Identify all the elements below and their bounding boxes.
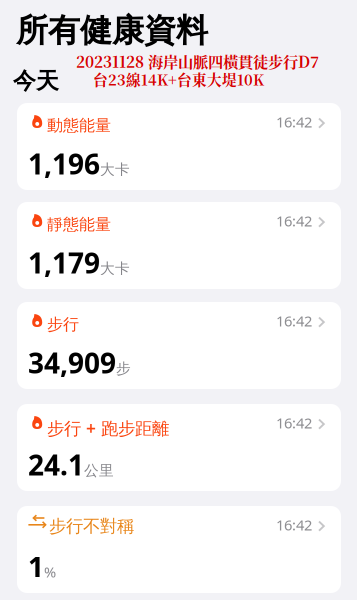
button[interactable]: 步行 — [17, 302, 341, 389]
staticText: 大卡 — [100, 260, 130, 278]
staticText: 動態能量 — [47, 115, 111, 135]
button[interactable]: 步行 + 跑步距離 — [17, 404, 341, 491]
staticText: 台23線14K+台東大堤10K — [93, 68, 264, 90]
staticText: % — [44, 562, 56, 581]
staticText: 20231128 海岸山脈四橫貫徒步行D7 — [76, 50, 319, 72]
button[interactable]: 動態能量 — [17, 103, 341, 190]
staticText: 今天 — [13, 67, 59, 95]
staticText: 1,196 — [28, 145, 100, 182]
staticText: 16:42 — [276, 413, 312, 432]
staticText: 靜態能量 — [47, 214, 111, 234]
staticText: 步行 + 跑步距離 — [47, 416, 169, 439]
staticText: 24.1 — [28, 446, 84, 483]
staticText: 步 — [116, 360, 131, 378]
staticText: 步行不對稱 — [49, 516, 134, 537]
staticText: 1 — [28, 548, 44, 585]
staticText: 16:42 — [276, 515, 312, 534]
button[interactable]: 靜態能量 — [17, 202, 341, 289]
staticText: 大卡 — [100, 161, 130, 179]
staticText: 1,179 — [28, 244, 100, 281]
staticText: 所有健康資料 — [16, 11, 208, 50]
staticText: 公里 — [84, 462, 114, 480]
staticText: 16:42 — [276, 211, 312, 230]
staticText: 34,909 — [28, 344, 116, 381]
button[interactable]: 步行不對稱 — [17, 506, 341, 593]
staticText: 16:42 — [276, 112, 312, 131]
staticText: 16:42 — [276, 311, 312, 330]
staticText: 步行 — [47, 314, 79, 334]
